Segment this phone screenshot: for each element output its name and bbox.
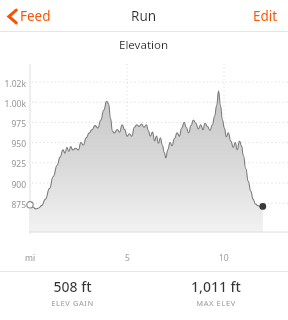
staticText: Run bbox=[131, 7, 157, 25]
staticText: 900 bbox=[11, 179, 26, 191]
staticText: 975 bbox=[11, 118, 26, 130]
staticText: 10 bbox=[219, 252, 229, 264]
staticText: ELEV GAIN bbox=[51, 298, 94, 308]
button[interactable]: 508 ft bbox=[0, 277, 144, 308]
staticText: MAX ELEV bbox=[196, 298, 236, 308]
staticText: 508 ft bbox=[53, 277, 92, 296]
button[interactable]: Edit bbox=[243, 2, 288, 30]
staticText: 1.02k bbox=[4, 78, 26, 90]
staticText: Elevation bbox=[119, 37, 169, 53]
button[interactable]: Feed bbox=[0, 3, 59, 29]
staticText: 5 bbox=[125, 252, 130, 264]
staticText: mi bbox=[25, 252, 36, 264]
button[interactable]: 1,011 ft bbox=[144, 277, 288, 308]
staticText: Feed bbox=[20, 7, 51, 25]
staticText: 925 bbox=[11, 158, 26, 170]
staticText: 950 bbox=[11, 138, 26, 150]
staticText: 1,011 ft bbox=[191, 277, 241, 296]
staticText: 875 bbox=[11, 199, 26, 211]
staticText: Edit bbox=[253, 7, 278, 25]
staticText: 1.00k bbox=[4, 98, 26, 110]
